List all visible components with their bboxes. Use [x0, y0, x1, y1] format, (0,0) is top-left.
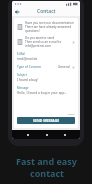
staticText: I found a bug!	[17, 78, 39, 82]
staticText: Fast and easy	[16, 155, 77, 167]
staticText: Hello, I found a bug in your app...	[17, 91, 67, 95]
staticText: Have you seen our documentation yet?	[25, 21, 75, 25]
staticText: contact	[30, 167, 64, 179]
staticText: Then send us an e-mail to	[25, 40, 62, 44]
button[interactable]: Have you seen our documentation yet?	[17, 21, 75, 33]
button[interactable]: Subject	[17, 73, 75, 83]
staticText: General	[58, 65, 70, 69]
button[interactable]: Back	[14, 9, 20, 15]
staticText: 0/800	[68, 112, 75, 115]
button[interactable]: Recents	[61, 131, 68, 138]
staticText: E-Mail	[17, 52, 26, 56]
staticText: SEND MESSAGE	[33, 118, 60, 123]
staticText: info@pentrixi.com	[25, 44, 51, 48]
button[interactable]: Type of Concern	[17, 65, 75, 70]
staticText: Contact	[37, 8, 56, 15]
staticText: Subject	[17, 73, 27, 77]
staticText: Type of Concern	[17, 65, 58, 69]
staticText: questions!	[25, 29, 40, 33]
button[interactable]: Do you want to send attachments?	[17, 36, 75, 48]
staticText: There we have already answered many	[25, 25, 75, 29]
button[interactable]: Home	[43, 131, 50, 138]
button[interactable]: E-Mail	[17, 52, 75, 62]
staticText: mail@mail.de	[17, 57, 38, 61]
button[interactable]: Message	[17, 86, 75, 95]
button[interactable]: Back	[24, 131, 31, 138]
staticText: Message	[17, 86, 29, 90]
staticText: Do you want to send attachments?	[25, 36, 72, 40]
button[interactable]: SEND MESSAGE	[17, 117, 75, 124]
